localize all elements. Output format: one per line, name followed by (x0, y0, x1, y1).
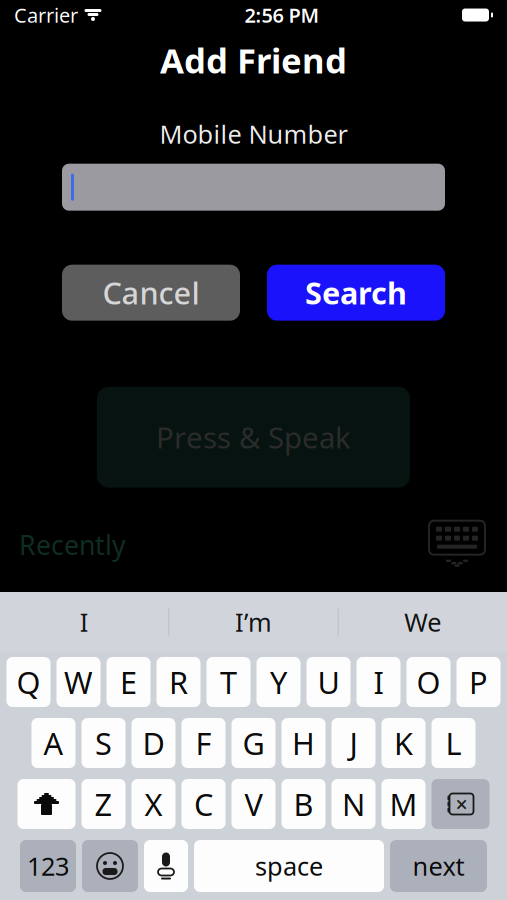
button[interactable]: I (0, 592, 168, 652)
button[interactable]: X (131, 779, 175, 829)
button[interactable]: Q (6, 657, 50, 707)
button[interactable]: R (156, 657, 200, 707)
button[interactable]: S (81, 718, 125, 768)
button[interactable]: Cancel (62, 265, 240, 321)
staticText: N (342, 784, 365, 824)
staticText: next (412, 849, 464, 883)
button[interactable]: P (456, 657, 500, 707)
button[interactable]: Search (267, 265, 445, 321)
staticText: I (373, 662, 383, 702)
staticText: C (194, 784, 213, 824)
staticText: E (120, 662, 137, 702)
button[interactable]: J (331, 718, 375, 768)
staticText: P (469, 662, 488, 702)
staticText: Recently (19, 527, 126, 562)
staticText: × (455, 790, 467, 818)
button[interactable]: 123 (20, 840, 76, 892)
button[interactable]: Emoji (82, 840, 138, 892)
button[interactable]: Shift (17, 779, 75, 829)
staticText: U (317, 662, 339, 702)
button[interactable]: T (206, 657, 250, 707)
button[interactable]: Hide keyboard (426, 518, 488, 572)
button[interactable]: Press & Speak (97, 387, 410, 488)
staticText: X (144, 784, 162, 824)
staticText: H (292, 723, 315, 763)
button[interactable]: K (381, 718, 425, 768)
button[interactable]: N (331, 779, 375, 829)
staticText: S (95, 723, 112, 763)
button[interactable]: Dictation (144, 840, 188, 892)
button[interactable]: G (231, 718, 275, 768)
button[interactable]: V (231, 779, 275, 829)
button[interactable]: Delete (431, 779, 489, 829)
button[interactable]: space (194, 840, 384, 892)
staticText: W (64, 662, 93, 702)
button[interactable]: We (339, 592, 507, 652)
staticText: M (389, 784, 417, 824)
staticText: Press & Speak (156, 418, 351, 457)
button[interactable]: Y (256, 657, 300, 707)
button[interactable]: E (106, 657, 150, 707)
staticText: Add Friend (160, 37, 347, 83)
staticText: J (349, 723, 357, 763)
staticText: Y (270, 662, 287, 702)
staticText: K (394, 723, 413, 763)
button[interactable]: C (181, 779, 225, 829)
staticText: F (195, 723, 211, 763)
staticText: space (255, 849, 323, 883)
staticText: 123 (27, 849, 69, 883)
button[interactable]: I’m (169, 592, 338, 652)
staticText: Carrier (14, 2, 78, 28)
staticText: Q (16, 662, 40, 702)
staticText: O (416, 662, 440, 702)
button[interactable]: H (281, 718, 325, 768)
staticText: A (43, 723, 63, 763)
staticText: R (169, 662, 188, 702)
staticText: Z (94, 784, 112, 824)
staticText: I’m (235, 605, 272, 639)
button[interactable]: W (56, 657, 100, 707)
staticText: Mobile Number (159, 117, 347, 151)
staticText: L (445, 723, 461, 763)
staticText: 2:56 PM (244, 2, 319, 28)
button[interactable]: O (406, 657, 450, 707)
staticText: V (244, 784, 262, 824)
button[interactable]: next (390, 840, 487, 892)
button[interactable]: U (306, 657, 350, 707)
staticText: Search (305, 272, 407, 313)
button[interactable]: A (31, 718, 75, 768)
button[interactable]: I (356, 657, 400, 707)
button[interactable]: Z (81, 779, 125, 829)
staticText: T (220, 662, 237, 702)
staticText: Cancel (102, 272, 199, 313)
staticText: I (80, 605, 89, 639)
button[interactable]: F (181, 718, 225, 768)
staticText: D (142, 723, 164, 763)
button[interactable]: D (131, 718, 175, 768)
button[interactable]: L (431, 718, 475, 768)
staticText: We (404, 605, 441, 639)
button[interactable]: M (381, 779, 425, 829)
staticText: B (293, 784, 313, 824)
staticText: G (242, 723, 264, 763)
button[interactable]: B (281, 779, 325, 829)
